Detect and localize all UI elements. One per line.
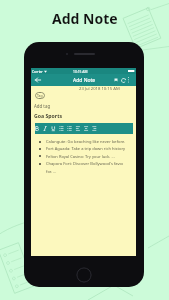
staticText: Fort Aguada: Take a trip down rich histo… [46,146,125,152]
button[interactable]: Undo [119,74,128,86]
button[interactable]: Back [33,74,42,86]
button[interactable]: Home [76,267,92,283]
staticText: 23 Jul 2018 10:15 AM [79,86,120,92]
staticText: Goa Sports [34,112,63,119]
button[interactable]: More options [125,74,132,86]
staticText: Add Note [73,77,96,84]
staticText: Felton Royal Casino: Try your luck. ... [46,154,115,160]
staticText: Tag [37,93,43,98]
button[interactable]: Save note [111,74,120,86]
staticText: 10:15 AM [73,69,88,73]
staticText: Carrier [32,69,43,73]
staticText: Add tag [34,103,51,109]
button[interactable]: Tag [35,92,45,99]
staticText: Add Note [52,9,118,28]
staticText: Calangute: Go beaching like never before… [46,139,125,145]
staticText: Chapora Fort: Discover Bollywood's favou… [46,161,123,167]
staticText: for. ... [46,169,57,175]
